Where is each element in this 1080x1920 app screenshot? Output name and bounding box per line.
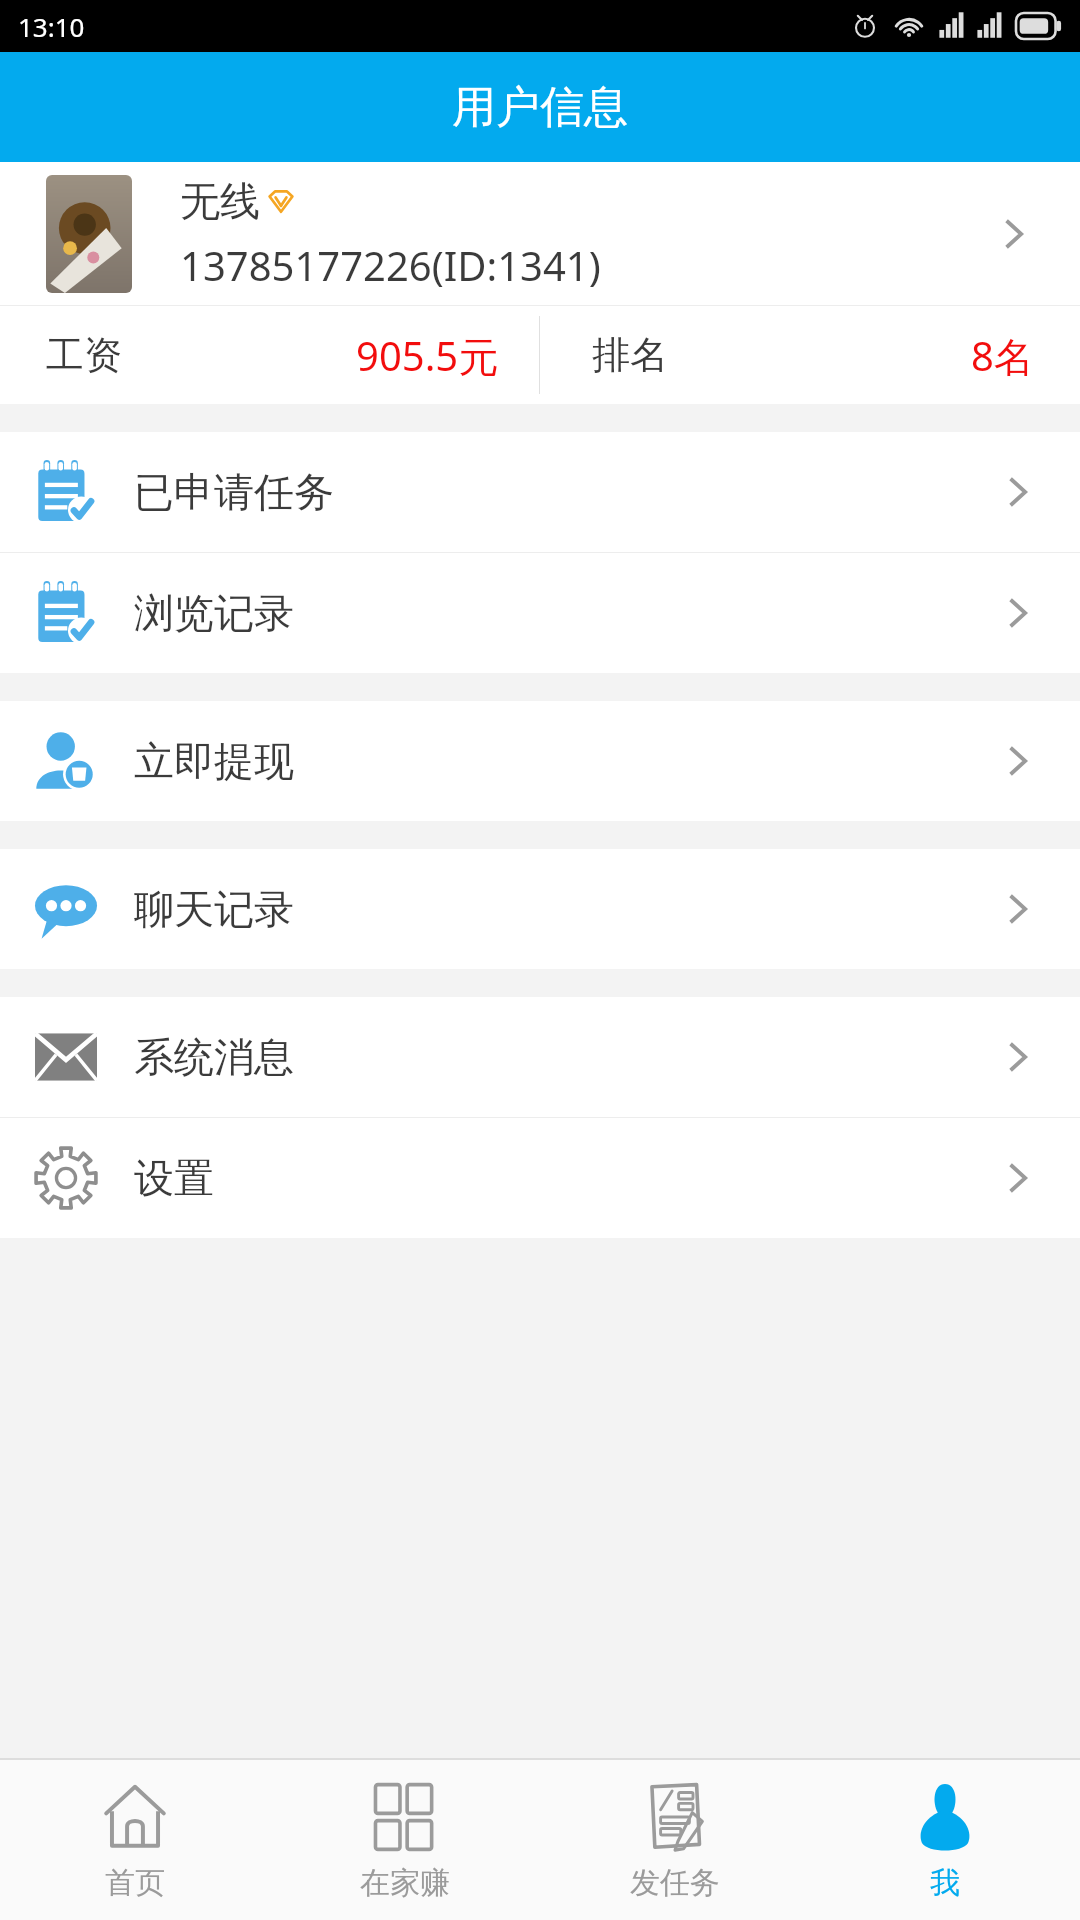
staticText: 排名 xyxy=(592,331,668,379)
staticText: 8名 xyxy=(971,328,1034,383)
staticText: 13:10 xyxy=(18,9,85,44)
button[interactable]: 发任务 xyxy=(540,1760,810,1920)
button[interactable]: 我 xyxy=(810,1760,1080,1920)
button[interactable]: 聊天记录 xyxy=(0,849,1080,969)
button[interactable]: 无线 xyxy=(0,162,1080,305)
button[interactable]: 设置 xyxy=(0,1118,1080,1238)
button[interactable]: 首页 xyxy=(0,1760,270,1920)
button[interactable]: 已申请任务 xyxy=(0,432,1080,552)
staticText: 发任务 xyxy=(630,1864,720,1902)
staticText: 13785177226(ID:1341) xyxy=(180,238,601,292)
button[interactable]: 浏览记录 xyxy=(0,553,1080,673)
button[interactable]: 立即提现 xyxy=(0,701,1080,821)
staticText: 首页 xyxy=(105,1864,165,1902)
staticText: 设置 xyxy=(134,1153,214,1203)
staticText: 已申请任务 xyxy=(134,467,334,517)
staticText: 我 xyxy=(930,1864,960,1902)
staticText: 工资 xyxy=(46,331,122,379)
staticText: 用户信息 xyxy=(452,80,628,135)
staticText: 浏览记录 xyxy=(134,588,294,638)
button[interactable]: 排名 xyxy=(540,306,1080,404)
staticText: 系统消息 xyxy=(134,1032,294,1082)
staticText: 聊天记录 xyxy=(134,884,294,934)
staticText: 905.5元 xyxy=(356,328,499,383)
button[interactable]: 在家赚 xyxy=(270,1760,540,1920)
button[interactable]: 系统消息 xyxy=(0,997,1080,1117)
staticText: 在家赚 xyxy=(360,1864,450,1902)
staticText: 无线 xyxy=(180,176,260,226)
button[interactable]: 工资 xyxy=(0,306,539,404)
staticText: 立即提现 xyxy=(134,736,294,786)
